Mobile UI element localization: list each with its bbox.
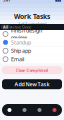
staticText: Clear Completed — [15, 67, 48, 73]
button[interactable]: Home — [2, 108, 17, 112]
staticText: Add New Task — [14, 81, 49, 88]
button[interactable]: Add New Task — [2, 79, 62, 89]
button[interactable]: Email — [0, 55, 64, 63]
staticText: Email — [11, 56, 24, 63]
staticText: Work Tasks — [14, 12, 50, 21]
button[interactable]: Profile — [47, 108, 62, 112]
button[interactable]: Active — [10, 24, 21, 29]
staticText: Standup — [11, 39, 31, 46]
staticText: Finish design review — [11, 27, 42, 41]
button[interactable]: Lists — [17, 108, 32, 112]
staticText: All — [3, 24, 8, 30]
staticText: Done — [22, 24, 31, 30]
button[interactable]: Finish design review — [0, 30, 64, 38]
button[interactable]: Done — [21, 24, 32, 29]
button[interactable]: Clear Completed — [2, 66, 62, 74]
button[interactable]: Search — [32, 108, 47, 112]
button[interactable]: All — [1, 24, 10, 29]
staticText: Ship app — [11, 47, 31, 54]
staticText: 3 of 4 completed — [18, 21, 46, 26]
staticText: ▮▮▮ — [55, 0, 61, 2]
staticText: 9:41 — [3, 0, 10, 3]
staticText: Active — [10, 24, 21, 30]
button[interactable]: Standup — [0, 38, 64, 46]
button[interactable]: Ship app — [0, 47, 64, 55]
